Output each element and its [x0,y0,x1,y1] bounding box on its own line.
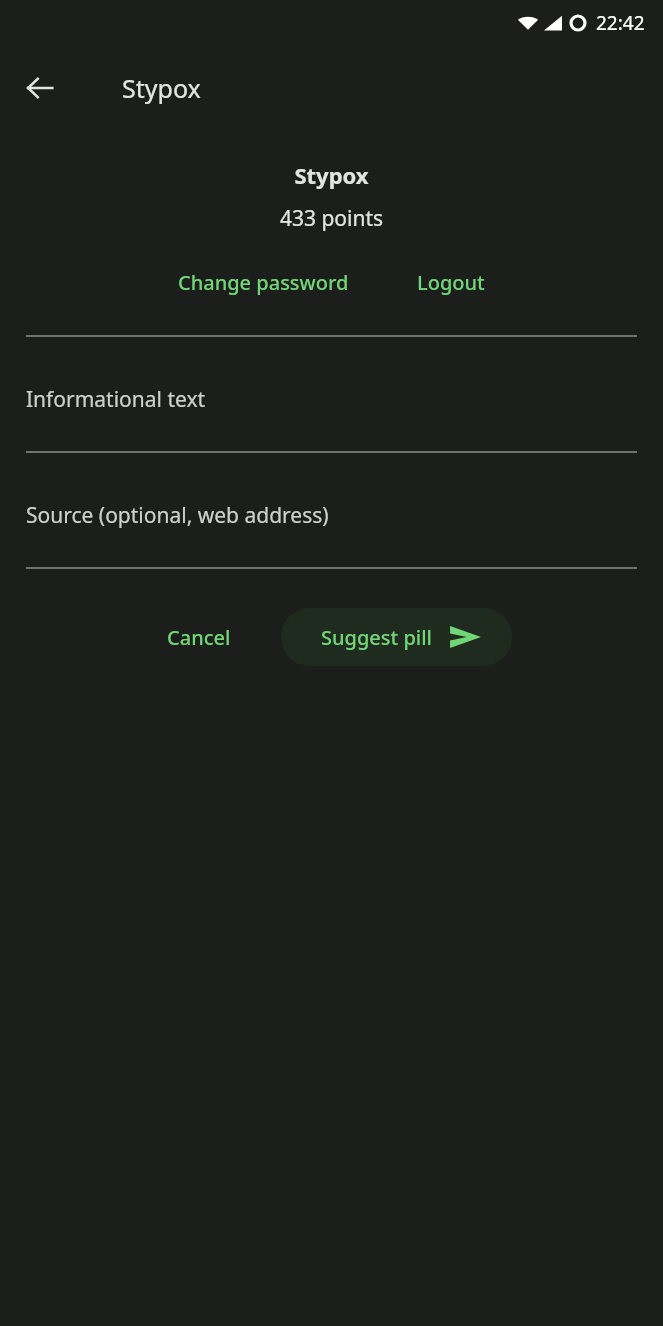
button[interactable]: Cancel [151,610,247,665]
staticText: Suggest pill [321,624,432,651]
button[interactable]: Source (optional, web address) [26,501,637,569]
staticText: Source (optional, web address) [26,501,329,530]
staticText: Logout [417,269,485,296]
staticText: Cancel [167,624,231,651]
button[interactable]: Back [10,58,70,118]
staticText: 433 points [0,204,663,233]
button[interactable]: Suggest pill [281,608,512,666]
staticText: Stypox [122,71,201,105]
button[interactable]: Change password [172,265,355,300]
button[interactable]: Informational text [26,385,637,453]
staticText: Stypox [0,160,663,190]
staticText: Change password [178,269,349,296]
staticText: 22:42 [596,10,645,36]
staticText: Informational text [26,385,206,414]
button[interactable]: Logout [411,265,491,300]
